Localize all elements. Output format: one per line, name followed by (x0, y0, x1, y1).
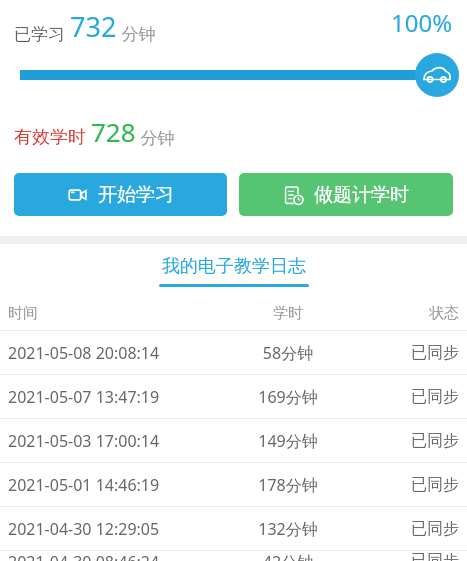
staticText: 149分钟 (225, 430, 351, 452)
staticText: 开始学习 (98, 183, 174, 207)
staticText: 2021-05-07 13:47:19 (8, 386, 225, 408)
button[interactable]: 2021-04-30 12:29:05 (0, 507, 467, 550)
staticText: 58分钟 (225, 342, 351, 364)
staticText: 2021-04-30 08:46:24 (8, 551, 225, 561)
staticText: 时间 (8, 304, 225, 323)
staticText: 我的电子教学日志 (162, 255, 306, 278)
staticText: 2021-04-30 12:29:05 (8, 518, 225, 540)
staticText: 分钟 (117, 22, 156, 45)
staticText: 2021-05-03 17:00:14 (8, 430, 225, 452)
button[interactable]: 开始学习 (14, 173, 227, 216)
staticText: 分钟 (136, 126, 175, 149)
staticText: 状态 (351, 304, 459, 323)
staticText: 已同步 (351, 343, 459, 363)
staticText: 169分钟 (225, 386, 351, 408)
staticText: 已同步 (351, 475, 459, 495)
button[interactable]: 2021-05-07 13:47:19 (0, 375, 467, 418)
staticText: 728 (91, 114, 136, 149)
staticText: 有效学时 (14, 124, 91, 149)
staticText: 2021-05-08 20:08:14 (8, 342, 225, 364)
button[interactable]: 做题计学时 (239, 173, 453, 216)
staticText: 732 (70, 8, 117, 45)
staticText: 已同步 (351, 551, 459, 561)
staticText: 学时 (225, 304, 351, 323)
staticText: 132分钟 (225, 518, 351, 540)
button[interactable]: 2021-05-01 14:46:19 (0, 463, 467, 506)
staticText: 178分钟 (225, 474, 351, 496)
staticText: 已学习 (14, 22, 70, 45)
button[interactable]: 2021-04-30 08:46:24 (0, 551, 467, 561)
staticText: 已同步 (351, 431, 459, 451)
staticText: 42分钟 (225, 551, 351, 561)
button[interactable]: 2021-05-03 17:00:14 (0, 419, 467, 462)
staticText: 2021-05-01 14:46:19 (8, 474, 225, 496)
button[interactable]: 2021-05-08 20:08:14 (0, 331, 467, 374)
staticText: 做题计学时 (314, 183, 409, 207)
staticText: 100% (391, 6, 453, 39)
staticText: 已同步 (351, 519, 459, 539)
staticText: 已同步 (351, 387, 459, 407)
button[interactable]: 我的电子教学日志 (0, 244, 467, 296)
